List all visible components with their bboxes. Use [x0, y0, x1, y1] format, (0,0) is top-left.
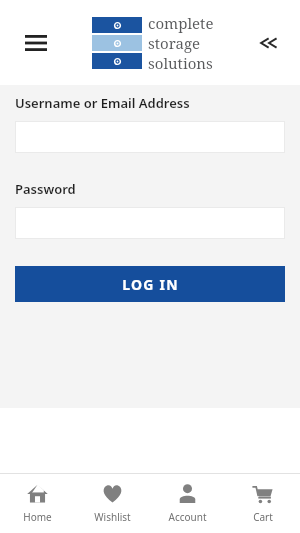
button[interactable]: complete: [92, 13, 214, 73]
button[interactable]: Account: [150, 474, 225, 533]
staticText: Home: [23, 510, 52, 524]
staticText: solutions: [148, 53, 213, 73]
staticText: LOG IN: [122, 275, 179, 294]
staticText: Password: [15, 180, 76, 198]
staticText: Account: [168, 510, 207, 524]
button[interactable]: LOG IN: [15, 266, 285, 302]
staticText: complete: [148, 13, 214, 33]
button[interactable]: Cart: [225, 474, 300, 533]
button[interactable]: Collapse: [252, 26, 286, 60]
staticText: Wishlist: [94, 510, 131, 524]
staticText: Cart: [253, 510, 273, 524]
button[interactable]: Menu: [18, 25, 54, 61]
staticText: storage: [148, 33, 201, 53]
button[interactable]: Wishlist: [75, 474, 150, 533]
button[interactable]: Password: [15, 207, 285, 239]
button[interactable]: Home: [0, 474, 75, 533]
staticText: Username or Email Address: [15, 94, 190, 112]
button[interactable]: Username or Email Address: [15, 121, 285, 153]
